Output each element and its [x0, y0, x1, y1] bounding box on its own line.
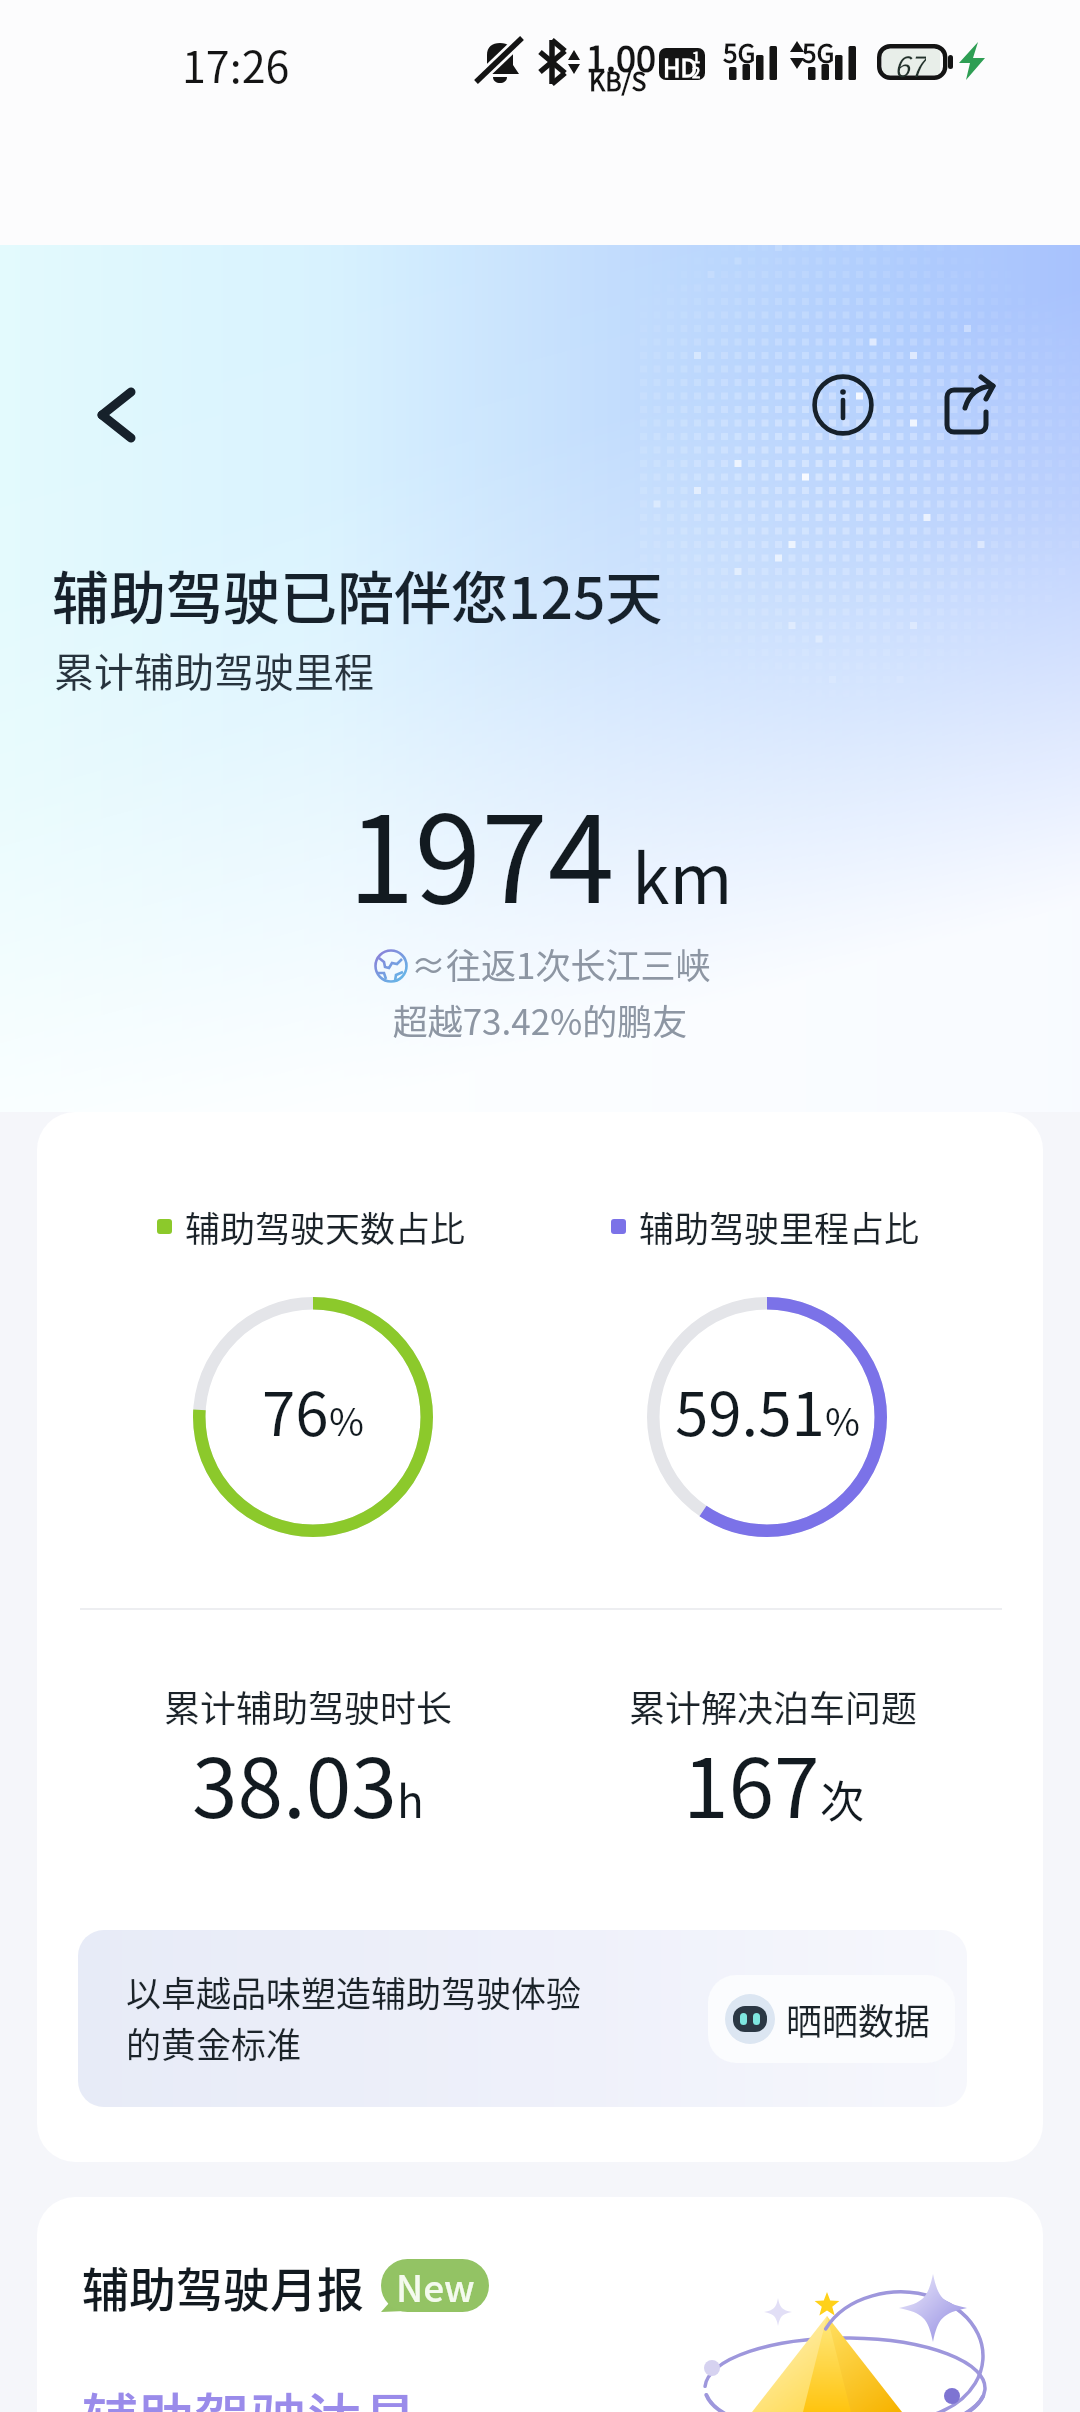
staticText: 1 [692, 48, 701, 68]
button[interactable]: 辅助驾驶月报 [37, 2197, 1043, 2412]
staticText: h [397, 1767, 424, 1831]
button[interactable]: Back [74, 372, 160, 458]
staticText: HD [663, 49, 697, 80]
staticText: New [396, 2259, 475, 2312]
staticText: 5G [723, 33, 756, 71]
staticText: 辅助驾驶已陪伴您125天 [52, 553, 663, 636]
staticText: KB/S [589, 62, 647, 98]
staticText: 辅助驾驶天数占比 [185, 1201, 466, 1252]
staticText: 以卓越品味塑造辅助驾驶体验 [126, 1966, 582, 2017]
staticText: 38.03 [192, 1723, 397, 1842]
staticText: % [825, 1392, 860, 1447]
staticText: 累计辅助驾驶里程 [54, 641, 374, 699]
staticText: 的黄金标准 [126, 2017, 302, 2068]
staticText: ≈往返1次长江三峡 [411, 938, 711, 989]
staticText: 67 [894, 45, 926, 81]
staticText: 辅助驾驶月报 [82, 2252, 364, 2320]
staticText: 次 [820, 1767, 864, 1831]
staticText: 辅助驾驶达具 [82, 2375, 418, 2412]
staticText: km [632, 825, 733, 923]
button[interactable]: Info [803, 365, 883, 445]
staticText: 59.51 [675, 1366, 825, 1453]
staticText: 1974 [348, 764, 615, 938]
staticText: 17:26 [182, 33, 290, 95]
staticText: 1.00 [586, 30, 656, 82]
staticText: 晒晒数据 [786, 1993, 931, 2045]
staticText: 5G [802, 33, 835, 71]
staticText: 167 [683, 1723, 820, 1842]
staticText: % [329, 1392, 364, 1447]
staticText: 累计辅助驾驶时长 [164, 1680, 453, 1732]
button[interactable]: Share [926, 368, 1006, 448]
staticText: 辅助驾驶里程占比 [639, 1201, 920, 1252]
staticText: 76 [262, 1366, 329, 1453]
staticText: 累计解决泊车问题 [629, 1680, 918, 1732]
staticText: 超越73.42%的鹏友 [0, 994, 1080, 1045]
button[interactable]: 晒晒数据 [708, 1975, 955, 2063]
staticText: 2 [692, 61, 701, 80]
